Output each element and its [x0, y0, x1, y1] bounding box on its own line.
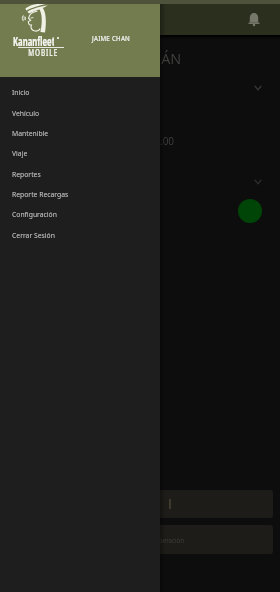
staticText: JAIME CHÁN — [99, 49, 182, 68]
button[interactable]: Viaje — [0, 143, 160, 163]
button[interactable]: Notifications — [243, 8, 265, 30]
button[interactable]: Configuración — [0, 204, 160, 224]
button[interactable]: Vehículo — [16, 80, 261, 96]
button[interactable]: Cerrar menú — [160, 0, 280, 592]
button[interactable]: Reporte Recargas — [0, 184, 160, 204]
staticText: Reporte Recargas — [12, 190, 69, 199]
staticText: Cerrar Sesión — [12, 231, 55, 240]
staticText: Vehículo — [16, 81, 60, 96]
staticText: Inicio — [12, 88, 30, 97]
button[interactable]: Vehículo — [0, 103, 160, 123]
button[interactable]: Inicio — [0, 82, 160, 102]
button[interactable]: Mantenible — [0, 123, 160, 143]
staticText: Saldo: S/. 0.00 — [106, 134, 175, 148]
button[interactable] — [7, 490, 273, 518]
button[interactable]: Estado — [16, 174, 261, 190]
button[interactable]: Cerrar Sesión — [0, 225, 160, 245]
staticText: JAIME CHAN — [92, 34, 131, 42]
staticText: MOBILE — [28, 47, 58, 58]
staticText: Viaje — [12, 149, 28, 158]
staticText: Configuración — [12, 210, 57, 219]
button[interactable]: Reportes — [0, 164, 160, 184]
staticText: Kananfleet — [13, 34, 54, 50]
staticText: Vehículo — [12, 109, 40, 118]
staticText: Reportes — [12, 170, 41, 179]
staticText: Estado — [16, 175, 48, 189]
button[interactable]: Estado activo — [238, 199, 262, 223]
staticText: Mantenible — [12, 129, 49, 138]
staticText: Registrar Operación — [126, 536, 185, 544]
button[interactable]: Registrar Operación — [7, 525, 273, 554]
